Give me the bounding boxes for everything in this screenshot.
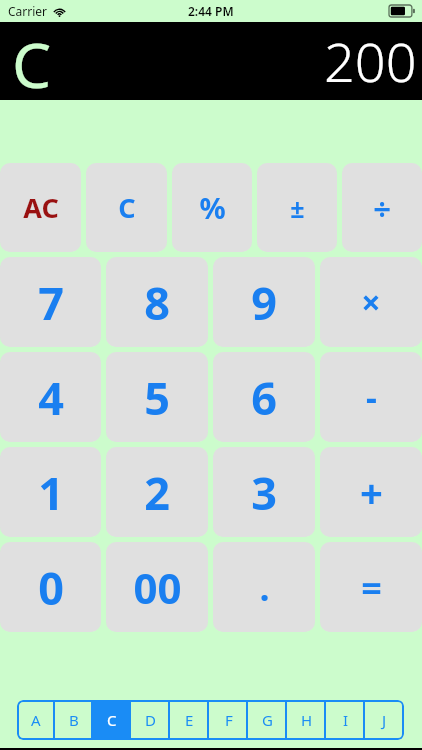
button[interactable]: ÷	[342, 163, 422, 252]
button[interactable]: D	[131, 700, 170, 740]
staticText: +	[360, 465, 383, 519]
staticText: 6	[251, 367, 277, 428]
button[interactable]: =	[320, 542, 422, 632]
staticText: D	[145, 710, 156, 730]
staticText: C	[12, 22, 52, 100]
staticText: 7	[38, 272, 64, 333]
staticText: 2:44 PM	[188, 3, 234, 19]
staticText: H	[301, 710, 313, 730]
button[interactable]: E	[170, 700, 209, 740]
staticText: B	[69, 710, 79, 730]
button[interactable]: J	[365, 700, 404, 740]
staticText: 1	[38, 462, 64, 523]
button[interactable]: 5	[106, 352, 208, 442]
staticText: I	[343, 710, 349, 730]
button[interactable]: 00	[106, 542, 208, 632]
button[interactable]: 2	[106, 447, 208, 537]
button[interactable]: I	[326, 700, 365, 740]
staticText: A	[31, 710, 41, 730]
button[interactable]: 3	[213, 447, 315, 537]
staticText: C	[118, 189, 136, 226]
button[interactable]: %	[172, 163, 252, 252]
button[interactable]: 8	[106, 257, 208, 347]
button[interactable]: B	[55, 700, 93, 740]
staticText: C	[107, 710, 117, 730]
staticText: %	[199, 188, 226, 227]
button[interactable]: C	[86, 163, 167, 252]
staticText: G	[262, 710, 273, 730]
staticText: 2	[144, 462, 170, 523]
staticText: 9	[251, 272, 277, 333]
staticText: F	[225, 710, 233, 730]
staticText: 4	[38, 367, 64, 428]
staticText: AC	[23, 189, 59, 226]
button[interactable]: 4	[0, 352, 101, 442]
staticText: E	[185, 710, 194, 730]
button[interactable]: 0	[0, 542, 101, 632]
button[interactable]: +	[320, 447, 422, 537]
button[interactable]: ×	[320, 257, 422, 347]
button[interactable]: C	[93, 700, 131, 740]
button[interactable]: 7	[0, 257, 101, 347]
staticText: 0	[38, 557, 64, 618]
button[interactable]: A	[17, 700, 55, 740]
staticText: ×	[361, 279, 381, 325]
staticText: Carrier	[8, 3, 48, 19]
button[interactable]: AC	[0, 163, 81, 252]
button[interactable]: -	[320, 352, 422, 442]
button[interactable]: 9	[213, 257, 315, 347]
button[interactable]: G	[248, 700, 287, 740]
staticText: J	[382, 710, 387, 730]
staticText: -	[366, 374, 377, 420]
staticText: 8	[144, 272, 170, 333]
staticText: =	[361, 563, 382, 612]
button[interactable]: .	[213, 542, 315, 632]
button[interactable]: H	[287, 700, 326, 740]
button[interactable]: 6	[213, 352, 315, 442]
staticText: ±	[290, 191, 305, 225]
button[interactable]: F	[209, 700, 248, 740]
staticText: 200	[324, 24, 417, 98]
button[interactable]: ±	[257, 163, 337, 252]
staticText: 3	[251, 462, 277, 523]
staticText: 00	[133, 559, 182, 616]
button[interactable]: 1	[0, 447, 101, 537]
staticText: ÷	[373, 187, 391, 229]
staticText: .	[259, 563, 270, 612]
staticText: 5	[144, 367, 170, 428]
